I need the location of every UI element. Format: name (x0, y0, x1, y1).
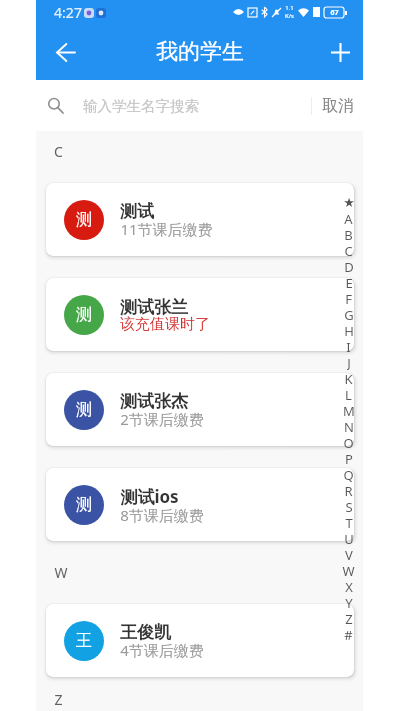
staticText: I (346, 338, 351, 354)
button[interactable]: 测 (46, 183, 354, 256)
button[interactable]: A (340, 210, 357, 226)
staticText: # (344, 626, 353, 642)
staticText: 输入学生名字搜索 (83, 97, 199, 115)
staticText: F (345, 290, 352, 306)
button[interactable]: Q (340, 466, 357, 482)
staticText: K (344, 370, 353, 386)
staticText: V (345, 546, 353, 562)
button[interactable]: H (340, 322, 357, 338)
button[interactable]: M (340, 402, 357, 418)
staticText: 我的学生 (156, 38, 244, 66)
button[interactable]: 测 (46, 278, 354, 351)
button[interactable]: R (340, 482, 357, 498)
staticText: 王俊凯 (120, 622, 171, 643)
staticText: Y (345, 594, 353, 610)
staticText: B (344, 226, 353, 242)
button[interactable]: Z (340, 610, 357, 626)
staticText: 2节课后缴费 (120, 409, 204, 429)
staticText: C (54, 142, 63, 161)
button[interactable]: ★ (340, 194, 357, 210)
staticText: 8节课后缴费 (120, 505, 204, 525)
staticText: 1.1 (285, 4, 294, 12)
staticText: L (345, 386, 352, 402)
staticText: T (345, 514, 353, 530)
staticText: M (343, 402, 355, 418)
staticText: A (344, 210, 353, 226)
staticText: 11节课后缴费 (120, 219, 213, 239)
staticText: 4节课后缴费 (120, 640, 204, 660)
staticText: 测 (76, 400, 92, 420)
button[interactable]: Y (340, 594, 357, 610)
staticText: 4:27 (54, 3, 82, 22)
button[interactable]: X (340, 578, 357, 594)
staticText: C (344, 242, 353, 258)
staticText: U (344, 530, 354, 546)
staticText: K/s (285, 12, 294, 20)
button[interactable]: B (340, 226, 357, 242)
staticText: 测试 (120, 201, 154, 222)
staticText: R (344, 482, 353, 498)
button[interactable]: W (340, 562, 357, 578)
button[interactable]: D (340, 258, 357, 274)
staticText: N (344, 418, 354, 434)
staticText: G (344, 306, 354, 322)
staticText: 测试张杰 (120, 391, 188, 412)
button[interactable]: G (340, 306, 357, 322)
staticText: Q (343, 466, 354, 482)
staticText: W (342, 562, 355, 578)
button[interactable]: T (340, 514, 357, 530)
staticText: 67 (330, 8, 339, 18)
staticText: O (343, 434, 354, 450)
staticText: 取消 (322, 96, 354, 116)
button[interactable]: 测 (46, 373, 354, 446)
staticText: H (344, 322, 354, 338)
staticText: E (345, 274, 353, 290)
button[interactable]: K (340, 370, 357, 386)
button[interactable]: F (340, 290, 357, 306)
button[interactable]: L (340, 386, 357, 402)
staticText: Z (345, 610, 353, 626)
staticText: P (345, 450, 353, 466)
button[interactable]: 测 (46, 468, 354, 541)
staticText: 测 (76, 495, 92, 515)
button[interactable]: Back (44, 30, 88, 74)
staticText: 该充值课时了 (120, 315, 210, 334)
staticText: X (345, 578, 353, 594)
staticText: Z (54, 690, 63, 709)
button[interactable]: 王 (46, 604, 354, 677)
staticText: 测 (76, 305, 92, 325)
button[interactable]: N (340, 418, 357, 434)
staticText: 测 (76, 210, 92, 230)
staticText: 测试ios (120, 485, 179, 508)
button[interactable]: Add (318, 30, 362, 74)
button[interactable]: U (340, 530, 357, 546)
staticText: 王 (76, 631, 92, 651)
button[interactable]: J (340, 354, 357, 370)
button[interactable]: O (340, 434, 357, 450)
button[interactable]: S (340, 498, 357, 514)
button[interactable]: 取消 (312, 80, 363, 131)
staticText: ★ (343, 195, 355, 210)
staticText: W (54, 563, 68, 582)
staticText: D (344, 258, 354, 274)
button[interactable]: E (340, 274, 357, 290)
button[interactable]: V (340, 546, 357, 562)
staticText: 测试张兰 (120, 297, 188, 318)
button[interactable]: I (340, 338, 357, 354)
button[interactable]: P (340, 450, 357, 466)
staticText: S (345, 498, 353, 514)
button[interactable]: # (340, 626, 357, 642)
button[interactable]: C (340, 242, 357, 258)
staticText: J (347, 354, 351, 370)
